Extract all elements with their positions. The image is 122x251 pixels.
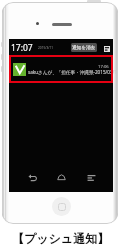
button[interactable]: Power xyxy=(87,0,101,4)
staticText: 17:07 xyxy=(11,42,33,54)
button[interactable]: Back xyxy=(25,170,39,184)
staticText: 通知を消去 xyxy=(72,45,96,51)
button[interactable]: Home button xyxy=(52,197,71,216)
button[interactable]: Recent apps xyxy=(84,170,98,184)
staticText: 17:06 xyxy=(98,64,109,70)
staticText: sakuさんが、「担任事・沖縄県-2015/03/11」に投稿 xyxy=(28,69,118,75)
button[interactable]: Home xyxy=(54,170,68,184)
staticText: 【プッシュ通知】 xyxy=(12,231,110,246)
other: Battery xyxy=(104,46,110,52)
button[interactable]: 通知を消去 xyxy=(71,43,97,52)
button[interactable]: 17:06 xyxy=(9,55,113,83)
staticText: 2015/3/11 xyxy=(38,46,54,50)
